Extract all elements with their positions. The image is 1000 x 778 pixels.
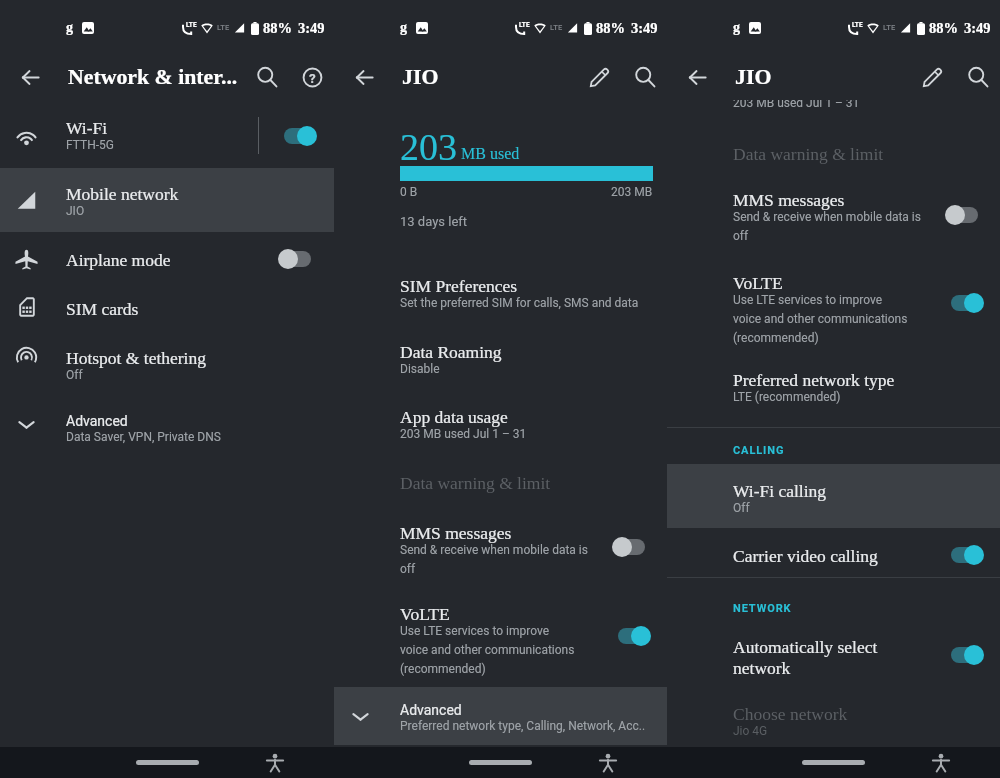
staticText: Mobile network bbox=[66, 184, 179, 203]
staticText: VoLTE bbox=[400, 604, 450, 623]
staticText: LTE bbox=[217, 23, 230, 32]
staticText: MMS messages bbox=[400, 523, 512, 542]
staticText: MMS messages bbox=[733, 190, 845, 209]
button[interactable]: Back bbox=[13, 60, 47, 94]
button[interactable] bbox=[0, 168, 334, 232]
staticText: VoLTE bbox=[733, 273, 783, 292]
staticText: SIM cards bbox=[66, 299, 139, 318]
staticText: Airplane mode bbox=[66, 250, 171, 269]
staticText: FTTH-5G bbox=[66, 138, 114, 152]
staticText: Hotspot & tethering bbox=[66, 348, 206, 367]
staticText: 203 MB used Jul 1 – 31 bbox=[400, 427, 527, 441]
staticText: LTE bbox=[883, 23, 896, 32]
staticText: JIO bbox=[66, 204, 85, 218]
staticText: Data warning & limit bbox=[400, 473, 551, 492]
staticText: JIO bbox=[735, 65, 772, 89]
button[interactable] bbox=[334, 687, 667, 745]
staticText: LTE bbox=[852, 21, 863, 29]
button[interactable]: MMS toggle bbox=[612, 537, 645, 557]
staticText: 203 bbox=[400, 126, 457, 168]
staticText: MB used bbox=[461, 145, 520, 163]
staticText: Off bbox=[733, 501, 750, 515]
button[interactable]: VoLTE toggle bbox=[951, 293, 984, 313]
button[interactable]: Accessibility bbox=[932, 754, 950, 772]
button[interactable]: Carrier video calling toggle bbox=[951, 545, 984, 565]
staticText: g bbox=[400, 20, 407, 36]
staticText: Choose network bbox=[733, 704, 848, 723]
staticText: NETWORK bbox=[733, 602, 792, 615]
staticText: Use LTE services to improve voice and ot… bbox=[400, 624, 576, 676]
staticText: g bbox=[66, 20, 73, 36]
staticText: App data usage bbox=[400, 407, 508, 426]
button[interactable]: Automatically select network toggle bbox=[951, 645, 984, 665]
staticText: Send & receive when mobile data is off bbox=[733, 210, 923, 243]
button[interactable]: Search bbox=[961, 60, 995, 94]
staticText: Carrier video calling bbox=[733, 546, 878, 565]
staticText: Preferred network type, Calling, Network… bbox=[400, 719, 656, 733]
button[interactable]: Accessibility bbox=[599, 754, 617, 772]
button[interactable]: Accessibility bbox=[266, 754, 284, 772]
staticText: LTE (recommended) bbox=[733, 390, 841, 404]
staticText: 3:49 bbox=[964, 20, 991, 36]
staticText: Wi-Fi bbox=[66, 118, 108, 137]
button[interactable]: Back bbox=[680, 60, 714, 94]
staticText: Preferred network type bbox=[733, 370, 895, 389]
staticText: Data warning & limit bbox=[733, 144, 884, 163]
staticText: CALLING bbox=[733, 444, 785, 457]
staticText: Advanced bbox=[400, 702, 462, 718]
button[interactable]: Edit bbox=[916, 60, 950, 94]
button[interactable]: Search bbox=[250, 60, 284, 94]
staticText: Disable bbox=[400, 362, 440, 376]
staticText: Set the preferred SIM for calls, SMS and… bbox=[400, 296, 639, 310]
button[interactable]: Search bbox=[628, 60, 662, 94]
staticText: Advanced bbox=[66, 413, 128, 429]
staticText: SIM Preferences bbox=[400, 276, 518, 295]
staticText: Network & inter... bbox=[68, 65, 238, 89]
staticText: 203 MB used Jul 1 – 31 bbox=[733, 96, 860, 110]
staticText: Use LTE services to improve voice and ot… bbox=[733, 293, 909, 345]
staticText: LTE bbox=[186, 21, 197, 29]
staticText: Data Saver, VPN, Private DNS bbox=[66, 430, 221, 444]
button[interactable]: Back bbox=[347, 60, 381, 94]
button[interactable]: Edit bbox=[583, 60, 617, 94]
button[interactable]: VoLTE toggle bbox=[618, 626, 651, 646]
staticText: 0 B bbox=[400, 185, 418, 199]
staticText: Automatically select network bbox=[733, 637, 913, 677]
staticText: g bbox=[733, 20, 740, 36]
staticText: LTE bbox=[519, 21, 530, 29]
button[interactable]: Airplane mode toggle bbox=[278, 249, 311, 269]
staticText: Send & receive when mobile data is off bbox=[400, 543, 590, 576]
button[interactable]: MMS toggle bbox=[945, 205, 978, 225]
button[interactable] bbox=[667, 464, 1000, 528]
staticText: Jio 4G bbox=[733, 724, 768, 738]
button[interactable]: Wi-Fi toggle bbox=[284, 126, 317, 146]
staticText: LTE bbox=[550, 23, 563, 32]
button[interactable]: Help bbox=[295, 60, 329, 94]
staticText: 3:49 bbox=[298, 20, 325, 36]
staticText: 88% bbox=[596, 20, 625, 36]
staticText: 3:49 bbox=[631, 20, 658, 36]
staticText: Data Roaming bbox=[400, 342, 502, 361]
staticText: ? bbox=[309, 70, 316, 86]
staticText: 88% bbox=[929, 20, 958, 36]
staticText: 203 MB bbox=[611, 185, 653, 199]
staticText: Off bbox=[66, 368, 83, 382]
staticText: 88% bbox=[263, 20, 292, 36]
staticText: JIO bbox=[402, 65, 439, 89]
staticText: 13 days left bbox=[400, 214, 468, 229]
staticText: Wi-Fi calling bbox=[733, 481, 827, 500]
